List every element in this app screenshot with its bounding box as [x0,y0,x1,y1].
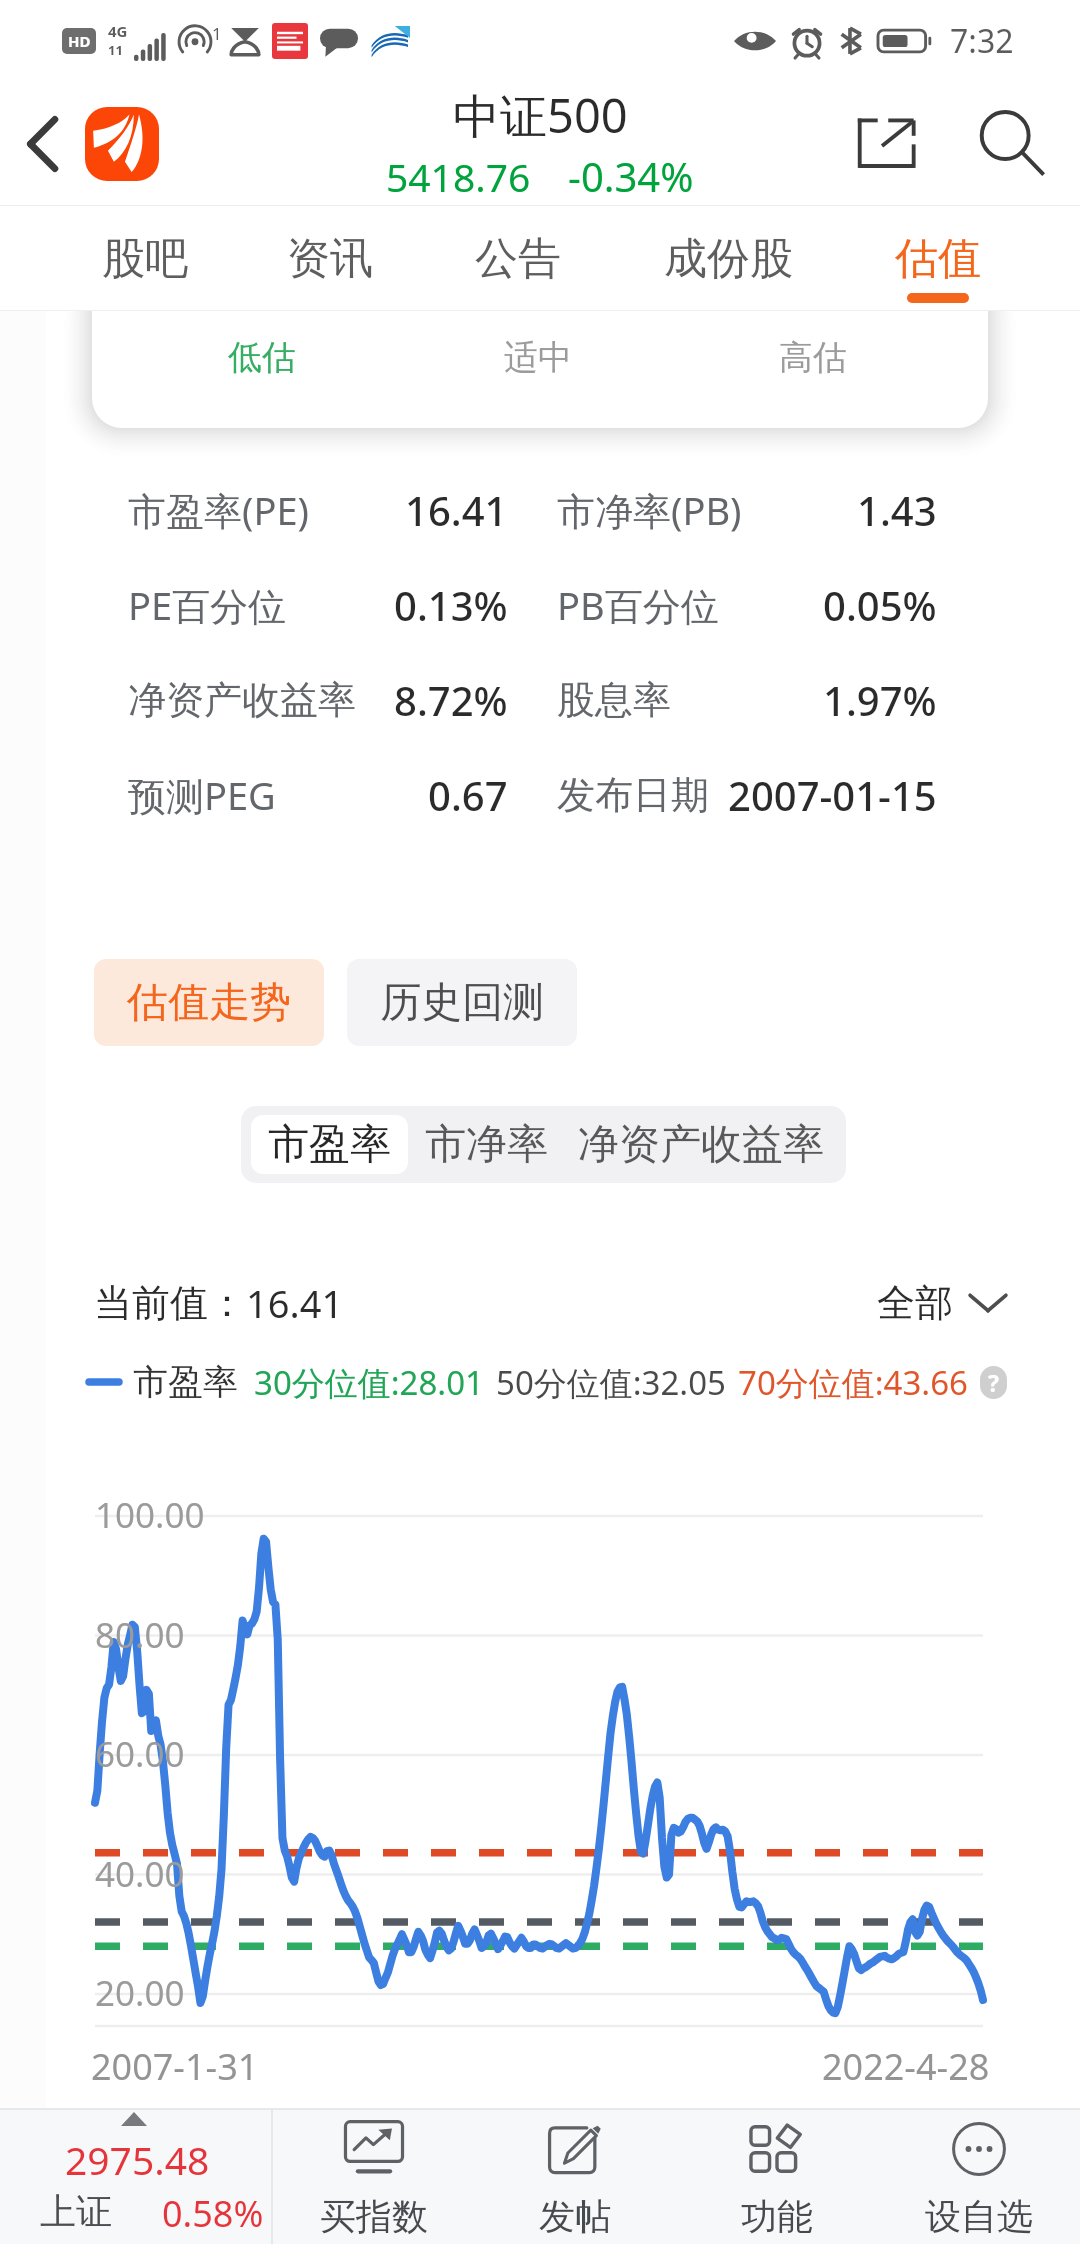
staticText: 16.41 [405,483,508,537]
staticText: 市盈率(PE) [128,484,309,536]
staticText: 市净率(PB) [557,484,742,536]
staticText: 40.00 [95,1850,185,1898]
staticText: 当前值： [94,1279,246,1327]
staticText: 5418.76 [386,150,531,203]
staticText: 净资产收益率 [128,676,356,724]
staticText: 发布日期 [557,771,709,819]
staticText: ? [988,1367,999,1398]
staticText: 2975.48 [65,2133,210,2186]
button[interactable]: 全部 [877,1279,1007,1327]
button[interactable]: 成份股 [644,206,812,311]
staticText: 20.00 [95,1969,185,2017]
staticText: 买指数 [320,2194,428,2239]
staticText: 股息率 [557,676,671,724]
button[interactable]: 2975.48 [0,2108,271,2244]
staticText: 市盈率 [268,1119,391,1171]
staticText: 50分位值:32.05 [496,1360,726,1405]
staticText: 低估 [228,336,296,379]
button[interactable]: 设自选 [878,2108,1080,2244]
button[interactable]: 净资产收益率 [571,1115,831,1174]
staticText: 70分位值:43.66 [738,1360,968,1405]
staticText: 设自选 [925,2194,1033,2239]
staticText: 中证500 [453,83,628,147]
staticText: 7:32 [950,19,1014,63]
button[interactable]: 返回 [0,82,86,206]
button[interactable]: 市盈率 [251,1115,408,1174]
staticText: 发帖 [539,2194,611,2239]
button[interactable]: 估值 [870,206,1006,311]
staticText: 80.00 [95,1611,185,1659]
staticText: 全部 [877,1279,953,1327]
staticText: 公告 [475,232,561,286]
staticText: 历史回测 [380,977,544,1029]
staticText: 适中 [504,336,572,379]
button[interactable]: 首页 [85,107,159,181]
staticText: 2022-4-28 [822,2042,990,2091]
staticText: 11 [108,41,123,59]
staticText: 4G [108,21,128,41]
staticText: 2007-01-15 [728,768,937,822]
staticText: HD [68,31,91,51]
button[interactable]: 买指数 [273,2108,474,2244]
staticText: 2007-1-31 [91,2042,259,2091]
staticText: 1 [212,22,222,45]
staticText: 市盈率 [133,1360,238,1404]
staticText: 30分位值:28.01 [254,1360,484,1405]
staticText: 市净率 [425,1119,548,1171]
staticText: 预测PEG [128,769,276,821]
button[interactable]: 分享 [829,82,945,206]
staticText: 8.72% [394,673,508,727]
button[interactable]: 估值走势 [94,959,324,1046]
button[interactable]: 功能 [676,2108,878,2244]
button[interactable]: 公告 [450,206,586,311]
staticText: 股吧 [102,232,188,286]
button[interactable]: 资讯 [262,206,398,311]
staticText: 功能 [741,2194,813,2239]
staticText: 0.58% [162,2189,264,2238]
button[interactable]: 帮助 [980,1366,1007,1399]
staticText: 估值 [895,232,981,286]
staticText: 上证 [40,2189,112,2234]
staticText: 高估 [779,336,847,379]
staticText: 16.41 [246,1277,344,1329]
staticText: 0.13% [394,578,508,632]
staticText: 成份股 [664,232,793,286]
staticText: 1.97% [823,673,937,727]
staticText: -0.34% [568,149,694,203]
staticText: 0.67 [428,768,508,822]
staticText: 1.43 [857,483,937,537]
staticText: 0.05% [823,578,937,632]
button[interactable]: 股吧 [77,206,213,311]
button[interactable]: 发帖 [474,2108,676,2244]
staticText: 60.00 [95,1730,185,1778]
staticText: PB百分位 [557,579,719,631]
staticText: 净资产收益率 [578,1119,824,1171]
staticText: 资讯 [287,232,373,286]
staticText: PE百分位 [128,579,287,631]
button[interactable]: 搜索 [945,82,1080,206]
staticText: 估值走势 [127,977,291,1029]
button[interactable]: 历史回测 [347,959,577,1046]
staticText: 100.00 [95,1491,205,1539]
button[interactable]: 市净率 [416,1115,556,1174]
